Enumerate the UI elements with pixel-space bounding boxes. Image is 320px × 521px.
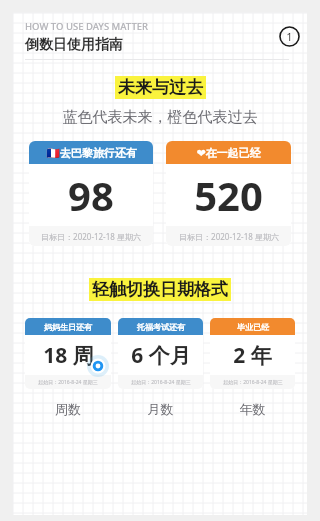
staticText: 目标日：2020-12-18 星期六	[41, 231, 141, 242]
staticText: 1	[286, 29, 293, 44]
staticText: 毕业已经	[237, 322, 269, 332]
button[interactable]: 托福考试还有	[118, 318, 203, 389]
staticText: 未来与过去	[118, 77, 203, 98]
staticText: 蓝色代表未来，橙色代表过去	[13, 108, 307, 127]
button[interactable]: 毕业已经	[210, 318, 295, 389]
staticText: 6 个月	[131, 341, 191, 370]
staticText: 98	[68, 168, 114, 222]
staticText: 目标日：2020-12-18 星期六	[179, 231, 279, 242]
staticText: 2 年	[233, 341, 272, 370]
staticText: 年数	[210, 401, 295, 417]
staticText: 周数	[25, 401, 111, 417]
staticText: 起始日：2016-8-24 星期三	[223, 379, 283, 386]
button[interactable]: ❤️在一起已经	[166, 141, 291, 246]
staticText: 月数	[118, 401, 203, 417]
staticText: 起始日：2016-8-24 星期三	[131, 379, 191, 386]
staticText: 🇫🇷去巴黎旅行还有	[46, 146, 137, 160]
staticText: 轻触切换日期格式	[92, 279, 228, 300]
button[interactable]: 妈妈生日还有	[25, 318, 111, 389]
button[interactable]: 🇫🇷去巴黎旅行还有	[29, 141, 153, 246]
button[interactable]: Step 1	[279, 26, 300, 47]
staticText: 起始日：2016-8-24 星期三	[38, 379, 98, 386]
staticText: HOW TO USE DAYS MATTER	[25, 20, 149, 33]
staticText: 520	[194, 168, 263, 222]
staticText: ❤️在一起已经	[196, 146, 261, 160]
staticText: 倒数日使用指南	[25, 36, 123, 54]
staticText: 妈妈生日还有	[44, 322, 92, 332]
staticText: 18 周	[43, 341, 94, 370]
staticText: 托福考试还有	[137, 322, 185, 332]
